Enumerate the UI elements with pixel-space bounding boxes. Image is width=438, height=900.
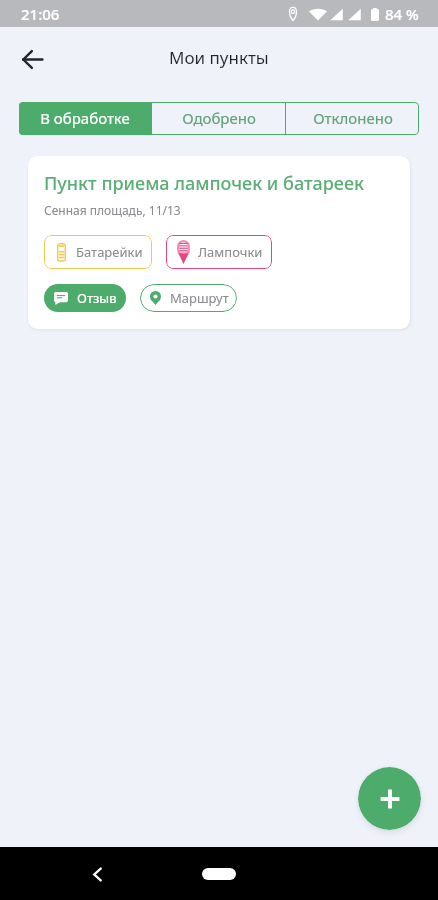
button[interactable]: Маршрут [140,284,237,312]
button[interactable]: Отклонено [286,102,419,135]
button[interactable]: Одобрено [152,102,285,135]
staticText: В обработке [40,108,130,128]
button[interactable]: Add point [358,767,421,830]
staticText: Маршрут [170,289,229,307]
staticText: Отклонено [313,108,393,128]
staticText: Отзыв [77,289,117,307]
staticText: Пункт приема лампочек и батареек [44,171,365,196]
staticText: Сенная площадь, 11/13 [44,202,181,218]
staticText: Одобрено [182,108,256,128]
button[interactable]: В обработке [19,102,151,135]
button[interactable]: Пункт приема лампочек и батареек [28,156,410,329]
button[interactable]: Home [202,868,236,880]
button[interactable]: Back [78,855,116,893]
button[interactable]: Лампочки [166,235,272,269]
staticText: 84 % [385,4,419,24]
staticText: Мои пункты [169,46,269,69]
button[interactable]: Отзыв [44,284,126,312]
button[interactable]: Батарейки [44,235,152,269]
button[interactable]: Back [8,35,56,83]
staticText: Батарейки [76,243,143,261]
staticText: Лампочки [198,243,263,261]
staticText: 21:06 [21,4,60,24]
